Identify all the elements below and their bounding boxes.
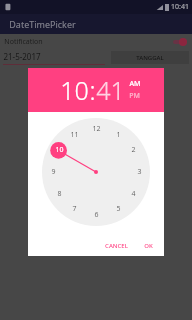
staticText: TANGGAL xyxy=(136,54,164,62)
staticText: PM xyxy=(129,91,140,101)
staticText: 41 xyxy=(96,73,125,107)
staticText: Notification xyxy=(4,37,43,47)
staticText: 5 xyxy=(116,204,121,214)
button[interactable]: CANCEL xyxy=(100,239,133,253)
button[interactable] xyxy=(171,38,187,46)
button[interactable]: AM xyxy=(129,79,141,89)
staticText: 4 xyxy=(131,189,136,199)
button[interactable]: OK xyxy=(139,239,158,253)
button[interactable]: PM xyxy=(129,91,140,101)
staticText: 6 xyxy=(94,210,99,220)
button[interactable]: Clock dial xyxy=(42,118,150,226)
staticText: 11 xyxy=(70,130,79,140)
staticText: 7 xyxy=(72,204,77,214)
staticText: OK xyxy=(144,242,153,250)
staticText: 2 xyxy=(131,145,136,155)
button[interactable]: TANGGAL xyxy=(111,51,189,64)
staticText: 8 xyxy=(57,189,62,199)
staticText: 10 xyxy=(60,73,89,107)
button[interactable]: 41 xyxy=(96,73,125,107)
staticText: 10:41 xyxy=(171,2,189,12)
staticText: DateTimePicker xyxy=(9,18,76,30)
staticText: CANCEL xyxy=(105,242,128,250)
button[interactable]: 10 xyxy=(60,73,89,107)
staticText: 3 xyxy=(137,167,142,177)
button[interactable]: Notification xyxy=(0,34,192,49)
staticText: AM xyxy=(129,79,141,89)
staticText: 10 xyxy=(55,145,64,155)
staticText: : xyxy=(89,73,96,107)
staticText: 12 xyxy=(92,124,101,134)
button[interactable]: 21-5-2017 xyxy=(3,51,105,65)
staticText: 9 xyxy=(51,167,56,177)
staticText: 21-5-2017 xyxy=(3,51,41,62)
staticText: 1 xyxy=(116,130,121,140)
